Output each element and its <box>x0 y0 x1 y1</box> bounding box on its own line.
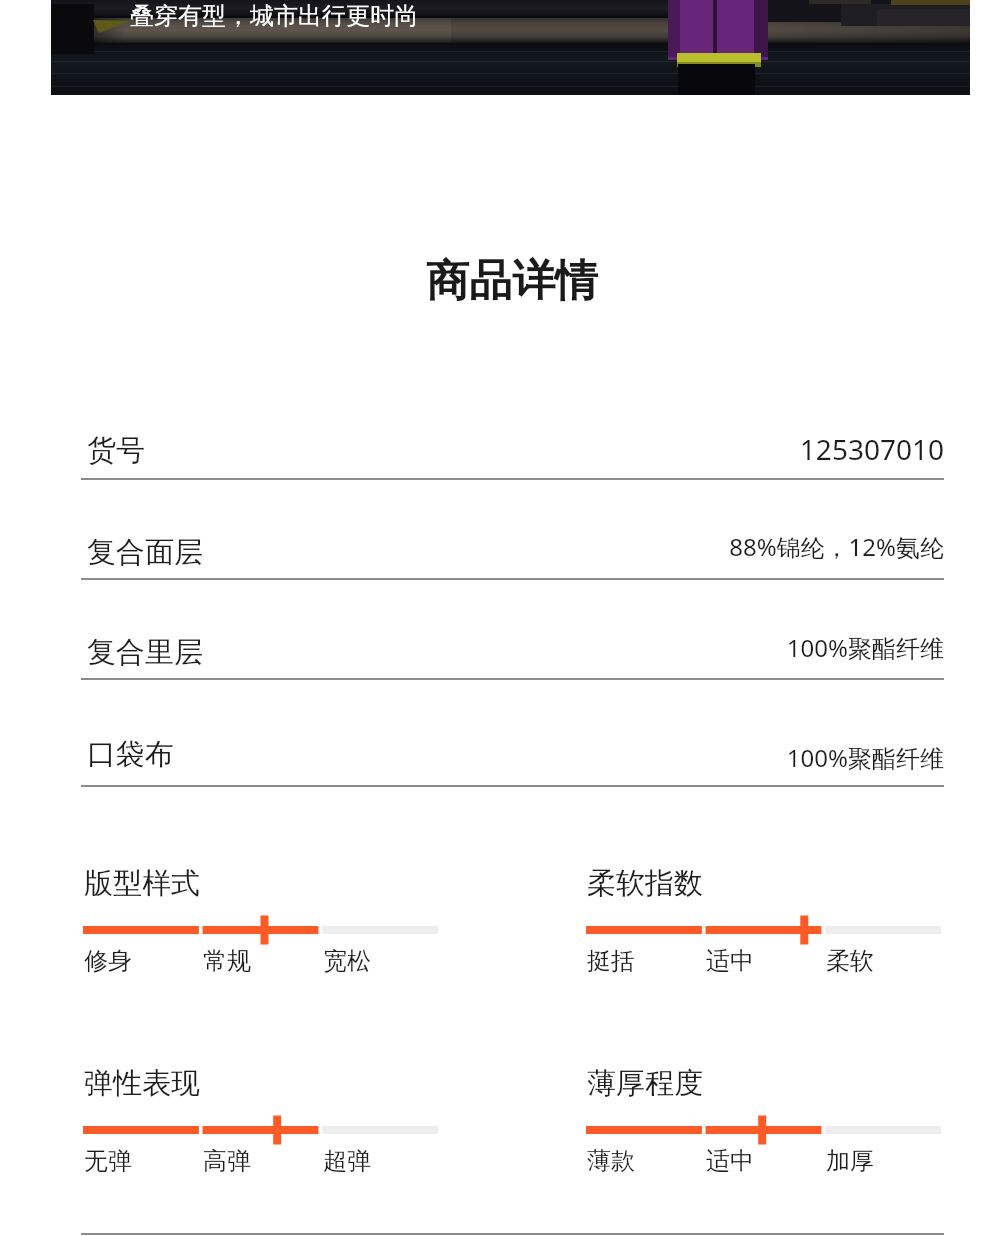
staticText: 柔软 <box>826 946 874 976</box>
button[interactable]: 弹性表现 <box>83 1064 438 1157</box>
staticText: 口袋布 <box>87 736 174 773</box>
staticText: 125307010 <box>81 430 944 468</box>
staticText: 薄款 <box>587 1146 635 1176</box>
staticText: 柔软指数 <box>587 865 703 902</box>
staticText: 宽松 <box>323 946 371 976</box>
button[interactable]: 复合里层 <box>81 590 944 678</box>
staticText: 挺括 <box>587 946 635 976</box>
staticText: 100%聚酯纤维 <box>81 631 944 664</box>
staticText: 复合面层 <box>87 534 203 571</box>
staticText: 修身 <box>84 946 132 976</box>
staticText: 弹性表现 <box>84 1065 200 1102</box>
button[interactable]: 复合面层 <box>81 490 944 578</box>
staticText: 复合里层 <box>87 634 203 671</box>
staticText: 常规 <box>203 946 251 976</box>
button[interactable]: 柔软指数 <box>586 864 941 957</box>
staticText: 薄厚程度 <box>587 1065 703 1102</box>
button[interactable]: 薄厚程度 <box>586 1064 941 1157</box>
staticText: 商品详情 <box>426 254 598 308</box>
button[interactable]: 货号 <box>81 390 944 478</box>
staticText: 适中 <box>706 946 754 976</box>
staticText: 适中 <box>706 1146 754 1176</box>
staticText: 100%聚酯纤维 <box>81 741 944 774</box>
button[interactable]: 商品图片：叠穿有型，城市出行更时尚 <box>51 0 970 95</box>
staticText: 叠穿有型，城市出行更时尚 <box>130 1 418 31</box>
staticText: 高弹 <box>203 1146 251 1176</box>
button[interactable]: 版型样式 <box>83 864 438 957</box>
staticText: 版型样式 <box>84 865 200 902</box>
staticText: 88%锦纶，12%氨纶 <box>81 530 944 563</box>
staticText: 无弹 <box>84 1146 132 1176</box>
staticText: 加厚 <box>826 1146 874 1176</box>
button[interactable]: 口袋布 <box>81 697 944 785</box>
staticText: 超弹 <box>323 1146 371 1176</box>
staticText: 货号 <box>87 432 145 469</box>
